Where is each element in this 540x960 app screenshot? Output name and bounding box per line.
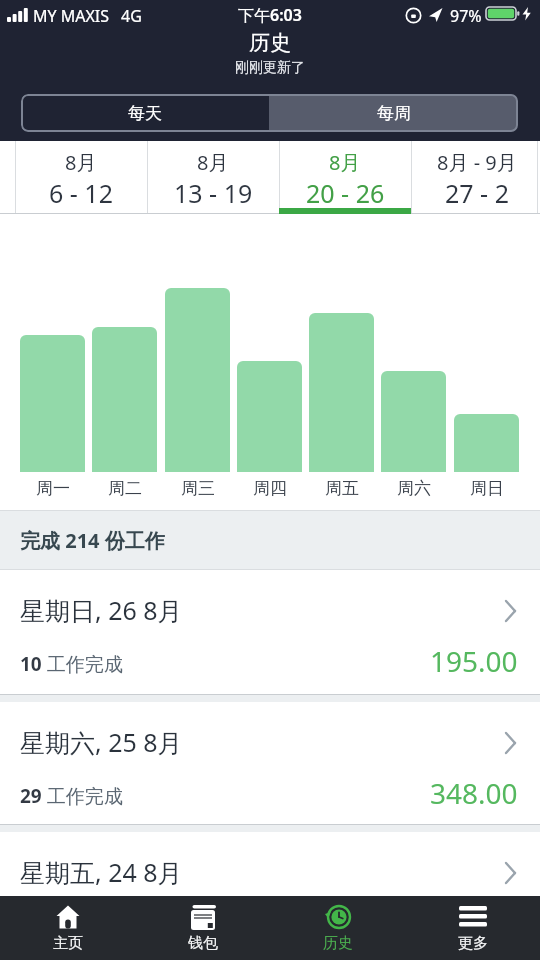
staticText: 完成 214 份工作 — [20, 527, 165, 554]
staticText: 20 - 26 — [306, 176, 385, 210]
staticText: 8月 — [329, 149, 361, 176]
staticText: 10 — [20, 651, 42, 677]
staticText: 钱包 — [188, 934, 218, 953]
staticText: 主页 — [53, 934, 83, 953]
button[interactable]: 8月 — [279, 141, 411, 214]
staticText: 刚刚更新了 — [235, 59, 305, 77]
button[interactable]: 每周 — [269, 94, 518, 132]
staticText: 工作完成 — [42, 651, 123, 677]
staticText: 29 — [20, 783, 42, 809]
button[interactable]: 星期五, 24 8月 — [0, 832, 540, 896]
button[interactable]: 8月 - 9月 — [411, 141, 540, 214]
staticText: 97% — [450, 5, 482, 27]
button[interactable]: 8月 — [0, 141, 15, 214]
staticText: 下午6:03 — [238, 4, 302, 26]
staticText: 8月 — [197, 149, 229, 176]
button[interactable]: 8月 — [147, 141, 279, 214]
staticText: 周六 — [397, 478, 431, 499]
staticText: 13 - 19 — [174, 176, 253, 210]
button[interactable]: 星期日, 26 8月 — [0, 570, 540, 694]
staticText: 周一 — [36, 478, 70, 499]
staticText: 每周 — [377, 103, 411, 124]
staticText: 更多 — [458, 934, 488, 953]
staticText: 8月 - 9月 — [437, 149, 517, 176]
staticText: 6 - 12 — [49, 176, 113, 210]
staticText: 历史 — [249, 30, 291, 56]
staticText: 195.00 — [430, 642, 518, 678]
staticText: 周五 — [325, 478, 359, 499]
staticText: 每天 — [128, 103, 162, 124]
button[interactable]: 历史 — [270, 896, 405, 960]
staticText: 8月 — [65, 149, 97, 176]
staticText: 工作完成 — [42, 783, 123, 809]
staticText: 星期日, 26 8月 — [20, 593, 183, 627]
button[interactable]: 每天 — [21, 94, 269, 132]
staticText: 周四 — [253, 478, 287, 499]
button[interactable]: 8月 — [15, 141, 147, 214]
staticText: 历史 — [323, 934, 353, 953]
staticText: 348.00 — [430, 774, 518, 810]
button[interactable]: 主页 — [0, 896, 135, 960]
staticText: 周二 — [108, 478, 142, 499]
staticText: 星期六, 25 8月 — [20, 725, 183, 759]
staticText: MY MAXIS — [33, 5, 110, 27]
staticText: 周三 — [181, 478, 215, 499]
staticText: 周日 — [470, 478, 504, 499]
button[interactable]: 钱包 — [135, 896, 270, 960]
button[interactable]: 星期六, 25 8月 — [0, 702, 540, 824]
staticText: 27 - 2 — [445, 176, 509, 210]
button[interactable]: 更多 — [405, 896, 540, 960]
staticText: 星期五, 24 8月 — [20, 855, 183, 889]
staticText: 4G — [121, 5, 142, 27]
